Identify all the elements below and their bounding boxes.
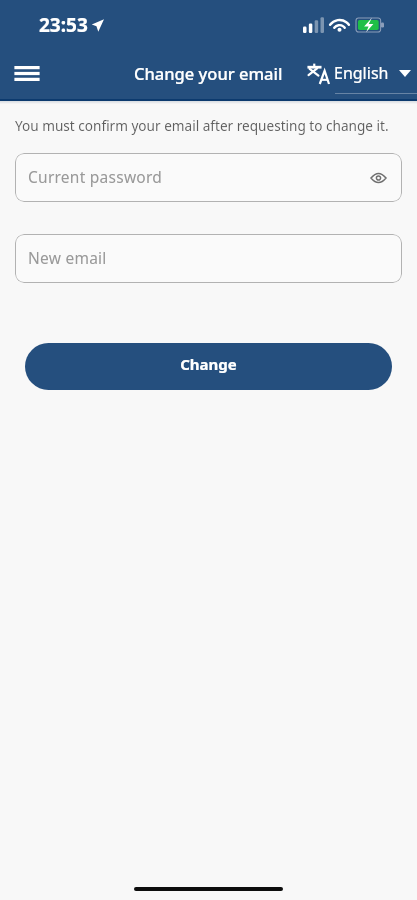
staticText: Current password: [28, 166, 163, 187]
staticText: Change your email: [134, 62, 283, 84]
staticText: New email: [28, 247, 107, 268]
button[interactable]: Current password: [15, 153, 402, 202]
staticText: English: [334, 62, 389, 84]
button[interactable]: Open navigation menu: [5, 53, 49, 97]
staticText: 23:53: [39, 12, 88, 38]
button[interactable]: Show password: [366, 166, 390, 190]
button[interactable]: English: [307, 54, 417, 96]
button[interactable]: Change: [25, 343, 392, 390]
button[interactable]: New email: [15, 234, 402, 283]
staticText: You must confirm your email after reques…: [15, 116, 389, 135]
staticText: Change: [180, 354, 237, 374]
